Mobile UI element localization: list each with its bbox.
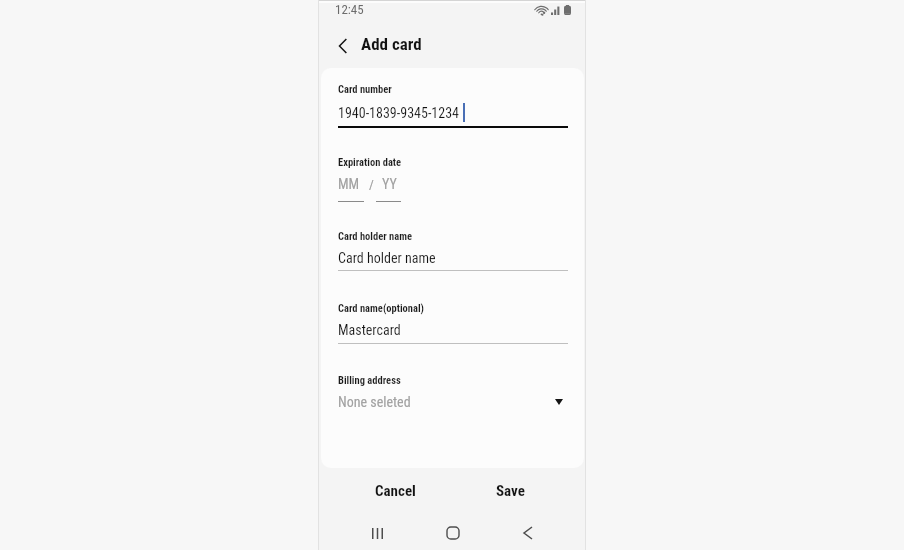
staticText: Save [496,482,525,500]
button[interactable]: Billing address, None seleted [338,394,568,410]
button[interactable]: Back [503,518,552,548]
staticText: YY [382,176,397,192]
button[interactable]: Save [460,470,560,512]
button[interactable]: Home [428,518,477,548]
button[interactable]: Cancel [345,470,445,512]
staticText: Card holder name [338,250,436,266]
button[interactable]: Card number 1940-1839-9345-1234 [338,102,568,121]
staticText: Add card [361,34,422,54]
staticText: / [369,177,374,192]
staticText: Card name(optional) [338,302,424,314]
staticText: 1940-1839-9345-1234 [338,105,459,121]
staticText: Cancel [375,482,416,500]
staticText: Expiration date [338,156,402,168]
staticText: Card number [338,83,392,95]
button[interactable]: Recent apps [353,518,402,548]
staticText: None seleted [338,394,411,410]
button[interactable]: Navigate up [330,33,356,59]
button[interactable]: Expiration month [338,176,364,192]
button[interactable]: Expiration year [382,176,407,192]
button[interactable]: Card holder name [338,250,568,266]
staticText: MM [338,176,360,192]
button[interactable]: Mastercard [338,322,568,338]
staticText: Card holder name [338,230,413,242]
staticText: Billing address [338,374,401,386]
staticText: 12:45 [335,2,364,17]
staticText: Mastercard [338,322,401,338]
